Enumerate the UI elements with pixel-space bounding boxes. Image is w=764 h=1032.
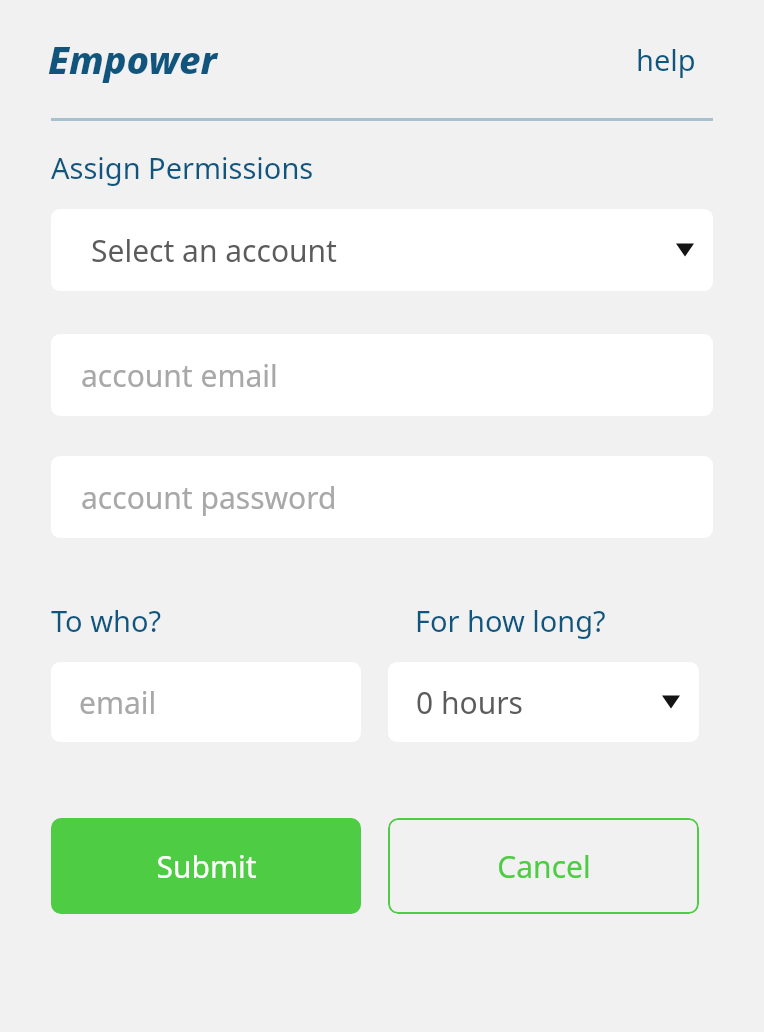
button[interactable]: help: [630, 34, 702, 85]
staticText: Empower: [48, 33, 217, 85]
staticText: For how long?: [415, 601, 606, 640]
staticText: email: [79, 682, 157, 723]
staticText: Cancel: [497, 846, 591, 887]
button[interactable]: Open dropdown: 0 hours: [388, 662, 699, 742]
staticText: 0 hours: [416, 682, 523, 723]
button[interactable]: Submit: [51, 818, 361, 914]
staticText: account email: [81, 355, 278, 396]
staticText: Assign Permissions: [51, 148, 314, 187]
button[interactable]: Open dropdown: Select an account: [51, 209, 713, 291]
button[interactable]: account password: [51, 456, 713, 538]
button[interactable]: account email: [51, 334, 713, 416]
staticText: account password: [81, 477, 337, 518]
staticText: Select an account: [91, 230, 337, 271]
button[interactable]: email: [51, 662, 361, 742]
staticText: To who?: [51, 601, 162, 640]
staticText: Submit: [156, 846, 257, 887]
staticText: help: [636, 40, 696, 79]
button[interactable]: Cancel: [388, 818, 699, 914]
